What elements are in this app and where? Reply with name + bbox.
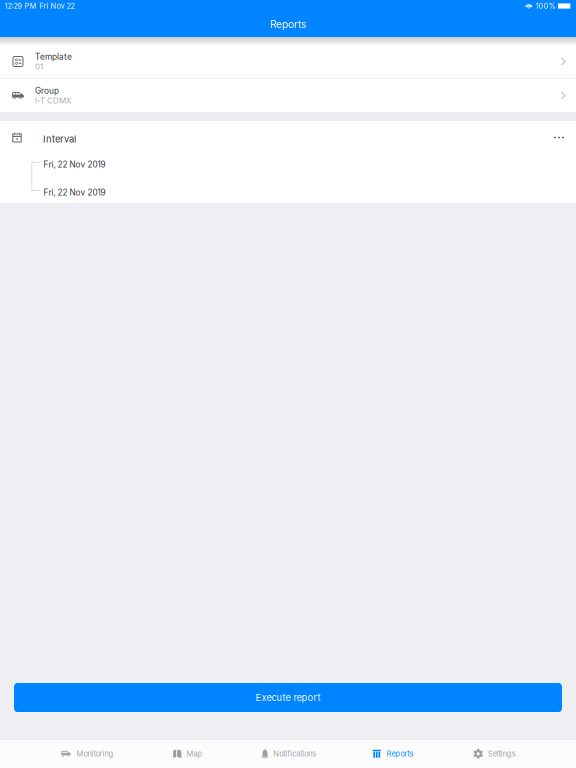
staticText: Notifications xyxy=(273,749,316,758)
button[interactable]: Settings xyxy=(441,739,543,768)
button[interactable]: Fri, 22 Nov 2019 xyxy=(0,178,576,206)
staticText: Fri, 22 Nov 2019 xyxy=(43,187,105,197)
staticText: Reports xyxy=(386,749,413,758)
staticText: 01 xyxy=(35,62,43,71)
button[interactable]: Execute report xyxy=(14,683,562,712)
button[interactable]: Template xyxy=(0,45,576,78)
staticText: 12:29 PM xyxy=(4,2,36,10)
staticText: Reports xyxy=(270,18,306,30)
staticText: Group xyxy=(35,86,59,96)
staticText: Interval xyxy=(43,133,76,145)
staticText: Fri, 22 Nov 2019 xyxy=(43,159,105,169)
button[interactable]: Reports xyxy=(339,739,441,768)
staticText: I-T CDMX xyxy=(35,96,71,105)
button[interactable]: Map xyxy=(135,739,237,768)
staticText: Settings xyxy=(488,749,516,758)
button[interactable]: Monitoring xyxy=(33,739,135,768)
staticText: Map xyxy=(186,749,202,758)
button[interactable]: Group xyxy=(0,79,576,112)
staticText: Fri Nov 22 xyxy=(39,2,74,10)
staticText: Monitoring xyxy=(76,749,113,758)
button[interactable]: Notifications xyxy=(237,739,339,768)
button[interactable]: More options xyxy=(548,125,570,149)
button[interactable]: Fri, 22 Nov 2019 xyxy=(0,150,576,178)
staticText: 100% xyxy=(536,2,556,10)
staticText: Template xyxy=(35,52,72,62)
staticText: Execute report xyxy=(255,692,320,703)
